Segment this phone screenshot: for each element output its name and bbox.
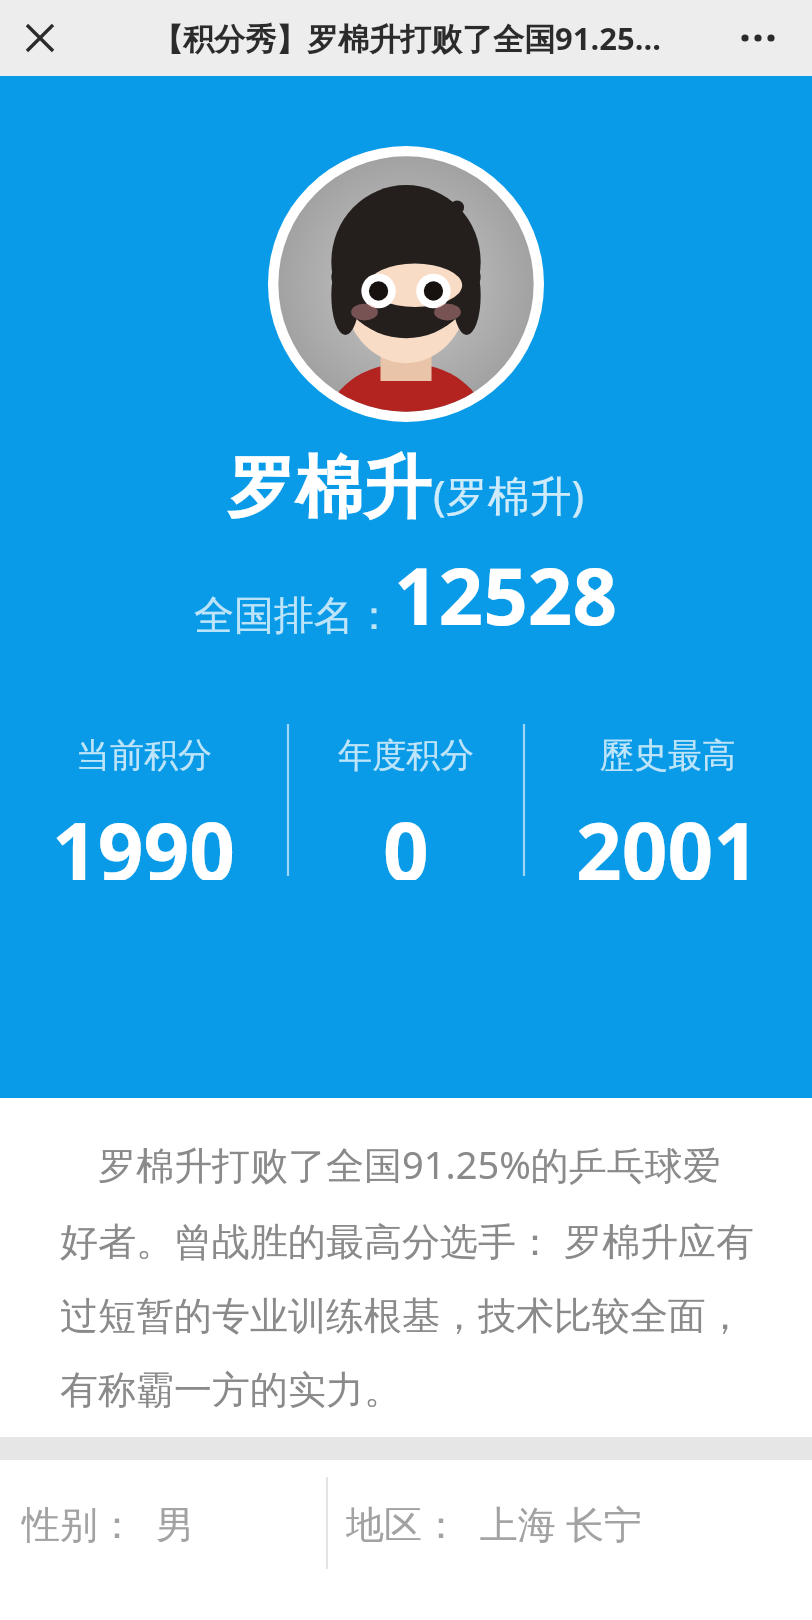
staticText: 2001 <box>576 795 760 880</box>
staticText: 【积分秀】罗棉升打败了全国91.25... <box>152 17 661 59</box>
staticText: 全国排名： <box>194 590 394 640</box>
staticText: 1990 <box>52 795 236 880</box>
button[interactable]: 地区： 上海 长宁 <box>326 1460 812 1585</box>
staticText: 年度积分 <box>338 734 474 777</box>
staticText: (罗棉升) <box>433 466 585 523</box>
button[interactable]: 歷史最高 <box>524 720 812 880</box>
button[interactable]: 当前积分 <box>0 720 288 880</box>
staticText: 地区： 上海 长宁 <box>346 1497 642 1549</box>
button[interactable]: Close <box>8 6 72 70</box>
button[interactable]: 罗棉升 <box>227 446 431 532</box>
button[interactable]: More options <box>726 6 790 70</box>
staticText: 当前积分 <box>76 734 212 777</box>
staticText: 0 <box>383 795 429 880</box>
staticText: 罗棉升打败了全国91.25%的乒乓球爱好者。曾战胜的最高分选手： 罗棉升应有过短… <box>60 1138 754 1415</box>
staticText: 歷史最高 <box>600 734 736 777</box>
staticText: 性别： 男 <box>22 1497 194 1549</box>
button[interactable]: 性别： 男 <box>0 1460 326 1585</box>
button[interactable]: 年度积分 <box>288 720 524 880</box>
staticText: 12528 <box>394 542 618 648</box>
